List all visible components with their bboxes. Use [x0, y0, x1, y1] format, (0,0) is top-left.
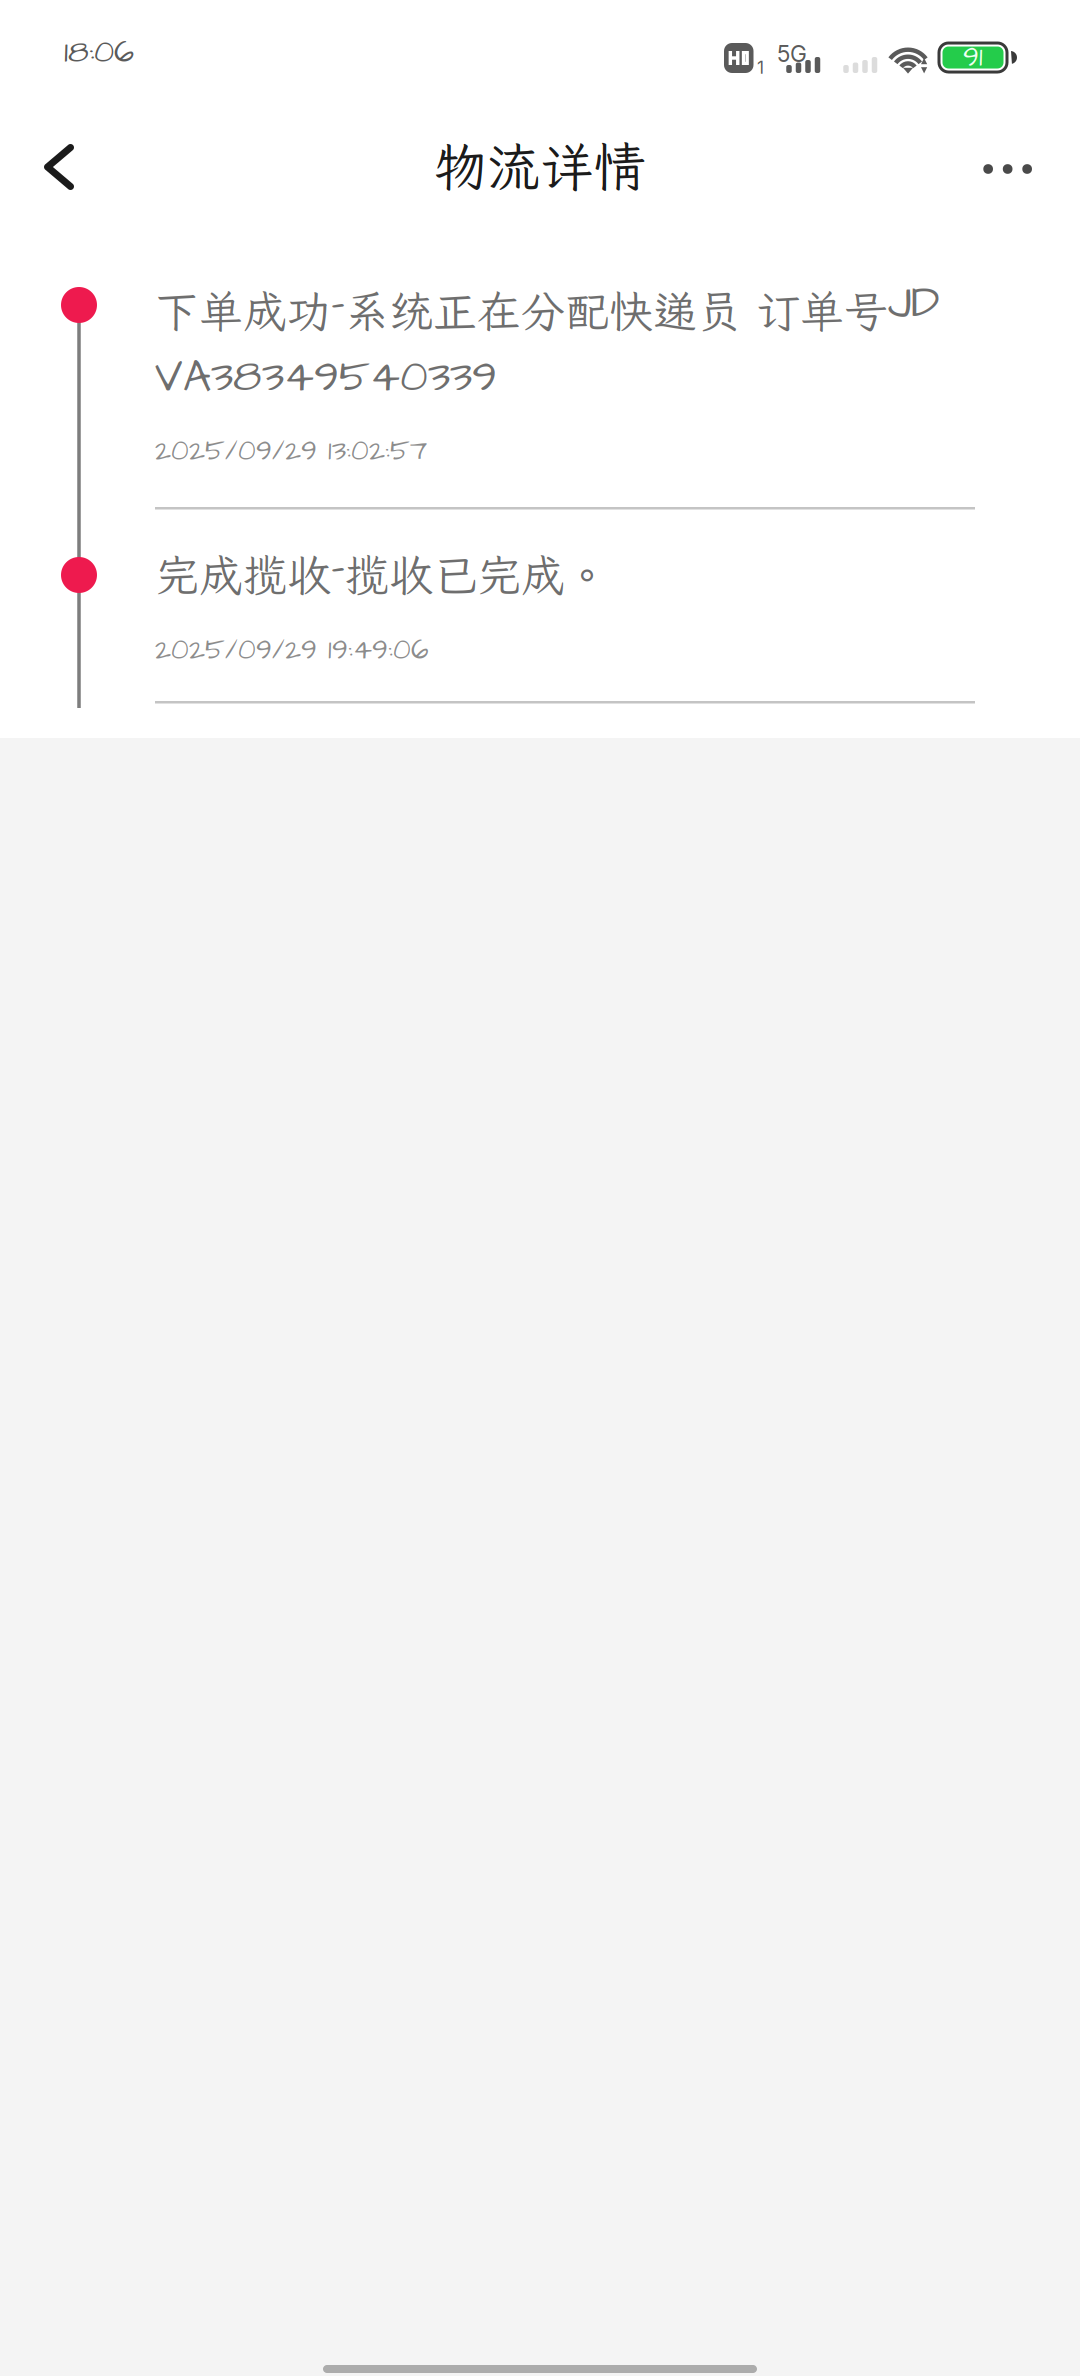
staticText: 2025/09/29 13:02:57: [155, 432, 427, 471]
button[interactable]: Back: [0, 115, 105, 225]
staticText: 5G: [777, 40, 807, 67]
staticText: 2025/09/29 19:49:06: [155, 631, 429, 670]
staticText: 1: [757, 57, 764, 78]
staticText: 18:06: [64, 30, 134, 74]
staticText: VA38349540339: [155, 347, 497, 408]
staticText: 下单成功-系统正在分配快递员 订单号JD: [155, 273, 940, 340]
staticText: 物流详情: [434, 131, 646, 201]
staticText: 91: [963, 38, 983, 77]
staticText: 完成揽收-揽收已完成。: [155, 537, 609, 604]
button[interactable]: More: [949, 115, 1080, 225]
